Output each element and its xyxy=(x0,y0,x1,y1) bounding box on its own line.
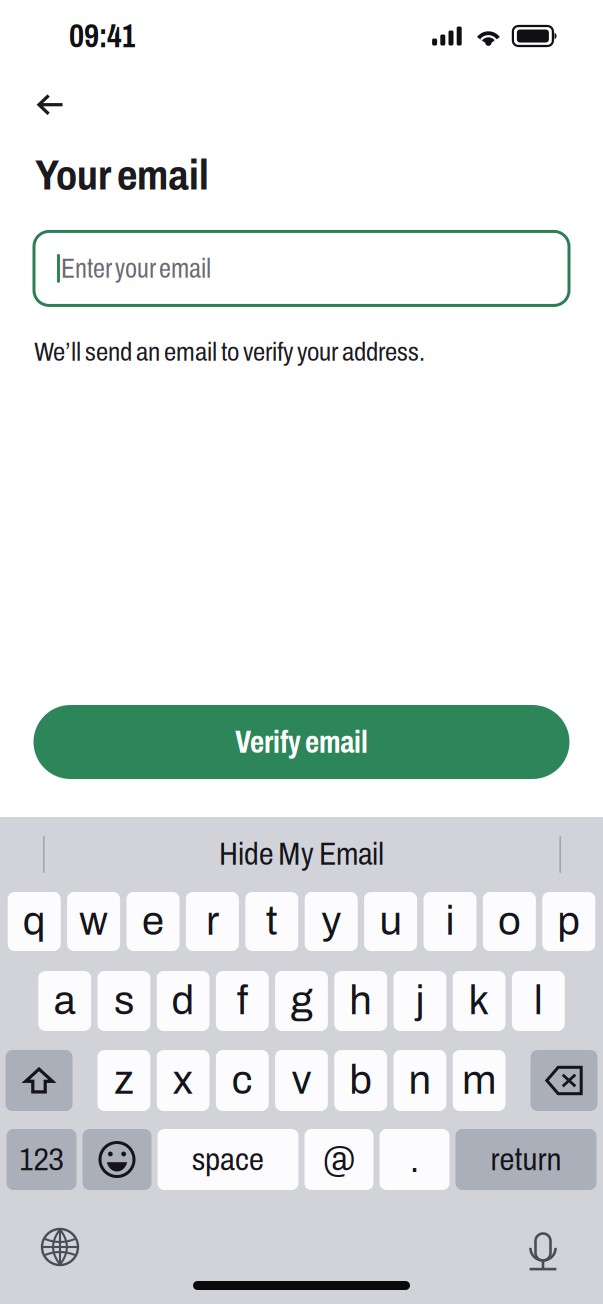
button[interactable]: x xyxy=(157,1050,209,1111)
button[interactable]: . xyxy=(379,1129,449,1190)
staticText: Hide My Email xyxy=(219,838,384,871)
button[interactable]: t xyxy=(245,892,298,951)
staticText: Verify email xyxy=(235,725,368,759)
button[interactable]: k xyxy=(453,971,505,1031)
staticText: 09:41 xyxy=(69,18,136,54)
button[interactable]: Emoji xyxy=(82,1129,151,1190)
staticText: q xyxy=(23,900,46,943)
button[interactable]: f xyxy=(216,971,269,1031)
button[interactable]: b xyxy=(334,1050,387,1111)
staticText: Enter your email xyxy=(61,253,211,284)
button[interactable]: d xyxy=(157,971,209,1031)
staticText: We’ll send an email to verify your addre… xyxy=(34,337,425,366)
staticText: t xyxy=(266,900,278,943)
staticText: o xyxy=(498,900,521,943)
button[interactable]: v xyxy=(275,1050,328,1111)
staticText: p xyxy=(557,900,580,943)
button[interactable]: h xyxy=(334,971,387,1031)
button[interactable]: @ xyxy=(304,1129,373,1190)
staticText: a xyxy=(54,979,76,1023)
staticText: v xyxy=(291,1059,311,1102)
staticText: . xyxy=(410,1139,419,1180)
button[interactable]: space xyxy=(157,1129,298,1190)
button[interactable]: z xyxy=(97,1050,150,1111)
button[interactable]: Shift xyxy=(5,1050,72,1111)
staticText: space xyxy=(192,1142,264,1177)
button[interactable]: i xyxy=(423,892,476,951)
button[interactable]: y xyxy=(305,892,358,951)
button[interactable]: j xyxy=(393,971,446,1031)
staticText: g xyxy=(290,979,312,1023)
button[interactable]: e xyxy=(126,892,179,951)
button[interactable]: m xyxy=(453,1050,505,1111)
button[interactable]: q xyxy=(8,892,61,951)
button[interactable]: Dictate xyxy=(521,1225,565,1269)
staticText: 123 xyxy=(19,1142,63,1177)
button[interactable]: g xyxy=(275,971,328,1031)
button[interactable]: Verify email xyxy=(33,705,569,779)
button[interactable]: s xyxy=(97,971,150,1031)
staticText: j xyxy=(415,979,424,1023)
button[interactable]: p xyxy=(542,892,595,951)
staticText: n xyxy=(408,1059,431,1102)
staticText: c xyxy=(232,1059,253,1102)
staticText: w xyxy=(79,900,108,943)
staticText: x xyxy=(173,1059,194,1102)
button[interactable]: r xyxy=(186,892,239,951)
staticText: k xyxy=(469,979,490,1023)
staticText: l xyxy=(534,979,543,1023)
staticText: m xyxy=(462,1059,496,1102)
button[interactable]: 123 xyxy=(6,1129,76,1190)
button[interactable]: c xyxy=(216,1050,269,1111)
staticText: r xyxy=(206,900,219,943)
staticText: i xyxy=(445,900,454,943)
staticText: Your email xyxy=(35,152,209,198)
staticText: f xyxy=(237,979,248,1023)
staticText: return xyxy=(490,1142,561,1177)
button[interactable]: n xyxy=(393,1050,446,1111)
staticText: d xyxy=(172,979,195,1023)
button[interactable]: l xyxy=(512,971,565,1031)
staticText: b xyxy=(349,1059,372,1102)
staticText: z xyxy=(114,1059,134,1102)
button[interactable]: a xyxy=(38,971,91,1031)
staticText: @ xyxy=(323,1139,355,1180)
staticText: h xyxy=(349,979,372,1023)
staticText: y xyxy=(321,900,341,943)
button[interactable]: o xyxy=(483,892,536,951)
button[interactable]: Next keyboard xyxy=(38,1225,82,1269)
button[interactable]: u xyxy=(364,892,417,951)
button[interactable]: Back xyxy=(37,84,85,126)
staticText: s xyxy=(114,979,134,1023)
button[interactable]: w xyxy=(67,892,120,951)
staticText: u xyxy=(380,900,402,943)
button[interactable]: Hide My Email xyxy=(66,826,536,882)
staticText: e xyxy=(142,900,164,943)
button[interactable]: return xyxy=(455,1129,596,1190)
button[interactable]: Delete xyxy=(530,1050,597,1111)
